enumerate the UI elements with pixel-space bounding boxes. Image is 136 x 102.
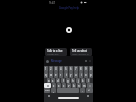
button[interactable]: 8	[79, 66, 83, 72]
staticText: z	[53, 84, 55, 88]
staticText: v	[68, 84, 70, 88]
button[interactable]: a	[47, 78, 50, 83]
button[interactable]: 2	[49, 66, 53, 72]
staticText: o	[85, 73, 87, 77]
button[interactable]: b	[72, 83, 76, 88]
button[interactable]: .	[80, 88, 85, 93]
button[interactable]: 4	[59, 66, 63, 72]
staticText: ,	[53, 89, 54, 93]
button[interactable]: ?123	[44, 88, 50, 93]
button[interactable]: f	[61, 78, 65, 83]
staticText: Takes 2 minutes to answer	[72, 53, 90, 56]
staticText: b	[73, 84, 75, 88]
staticText: i	[81, 73, 82, 77]
staticText: d	[57, 79, 59, 83]
staticText: 9	[85, 67, 87, 71]
button[interactable]: r	[59, 72, 63, 78]
button[interactable]: o	[84, 72, 88, 78]
button[interactable]: ↵	[86, 88, 93, 93]
staticText: 1	[45, 67, 47, 71]
staticText: p	[90, 73, 92, 77]
staticText: 7	[75, 67, 77, 71]
staticText: f	[63, 79, 64, 83]
button[interactable]: t	[64, 72, 68, 78]
staticText: m	[83, 84, 86, 88]
staticText: 3	[55, 67, 57, 71]
button[interactable]: 6	[69, 66, 73, 72]
button[interactable]: d	[56, 78, 60, 83]
button[interactable]: 3	[54, 66, 58, 72]
button[interactable]: 0	[89, 66, 93, 72]
staticText: t	[66, 73, 67, 77]
staticText: ↵	[88, 89, 91, 92]
staticText: g	[67, 79, 69, 83]
staticText: w	[50, 73, 53, 77]
staticText: h	[72, 79, 74, 83]
staticText: n	[78, 84, 80, 88]
button[interactable]: s	[51, 78, 55, 83]
staticText: Talk to a live agent	[47, 49, 65, 52]
other: Google	[46, 60, 49, 63]
button[interactable]: Shift	[44, 83, 51, 88]
staticText: 2	[50, 67, 52, 71]
staticText: k	[82, 79, 84, 83]
button[interactable]: h	[71, 78, 75, 83]
staticText: s	[52, 79, 54, 83]
button[interactable]: u	[74, 72, 78, 78]
staticText: Message	[51, 59, 62, 63]
button[interactable]: m	[82, 83, 86, 88]
staticText: 4	[60, 67, 62, 71]
button[interactable]: x	[57, 83, 61, 88]
button[interactable]: n	[77, 83, 81, 88]
staticText: Average wait	[47, 53, 59, 56]
button[interactable]: 1	[44, 66, 48, 72]
staticText: .	[82, 89, 83, 93]
staticText: 8	[80, 67, 82, 71]
staticText: y	[70, 73, 72, 77]
staticText: u	[75, 73, 77, 77]
staticText: Google Pay help	[59, 6, 79, 10]
button[interactable]: i	[79, 72, 83, 78]
button[interactable]: k	[81, 78, 85, 83]
staticText: ?123	[45, 89, 50, 92]
button[interactable]: q	[44, 72, 48, 78]
button[interactable]: 7	[74, 66, 78, 72]
staticText: q	[45, 73, 47, 77]
button[interactable]: e	[54, 72, 58, 78]
staticText: 5	[65, 67, 67, 71]
button[interactable]: g	[66, 78, 70, 83]
button[interactable]: w	[49, 72, 53, 78]
staticText: r	[60, 73, 62, 77]
button[interactable]: ,	[51, 88, 56, 93]
button[interactable]: Tell us what happened	[70, 48, 92, 56]
staticText: a	[48, 79, 50, 83]
button[interactable]: l	[86, 78, 90, 83]
button[interactable]: z	[52, 83, 56, 88]
staticText: 9:41	[49, 1, 56, 5]
button[interactable]: 9	[84, 66, 88, 72]
staticText: e	[55, 73, 57, 77]
staticText: 6	[70, 67, 72, 71]
staticText: x	[58, 84, 60, 88]
staticText: j	[78, 79, 79, 83]
button[interactable]: v	[67, 83, 71, 88]
staticText: Tell us what happened	[72, 49, 90, 52]
button[interactable]: 5	[64, 66, 68, 72]
button[interactable]: y	[69, 72, 73, 78]
button[interactable]: p	[89, 72, 93, 78]
staticText: l	[88, 79, 89, 83]
staticText: c	[63, 84, 65, 88]
button[interactable]: Talk to a live agent	[45, 48, 67, 56]
button[interactable]: j	[76, 78, 80, 83]
button[interactable]: c	[62, 83, 66, 88]
button[interactable]: Backspace	[87, 83, 93, 88]
staticText: 0	[90, 67, 92, 71]
